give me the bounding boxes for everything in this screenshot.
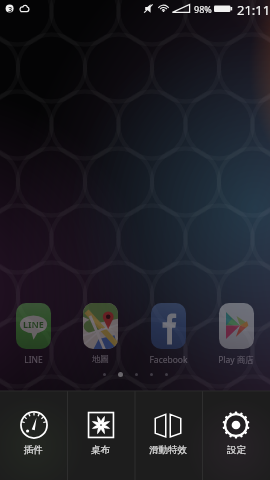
staticText: Play 商店: [218, 354, 254, 366]
staticText: LINE: [23, 318, 44, 330]
button[interactable]: LINE: [0, 303, 67, 366]
staticText: 21:11: [237, 1, 270, 19]
staticText: 98%: [194, 3, 212, 15]
staticText: 地圖: [92, 354, 109, 365]
staticText: LINE: [24, 354, 43, 366]
staticText: 滑動特效: [149, 444, 187, 456]
staticText: 3: [8, 4, 13, 14]
button[interactable]: 地圖: [67, 303, 134, 365]
staticText: 桌布: [91, 444, 110, 456]
button[interactable]: Play 商店: [202, 303, 270, 366]
button[interactable]: Facebook: [134, 303, 202, 366]
button[interactable]: 插件: [0, 391, 67, 480]
staticText: Facebook: [149, 354, 188, 366]
staticText: 插件: [24, 444, 43, 456]
button[interactable]: 滑動特效: [134, 391, 202, 480]
staticText: 設定: [227, 444, 246, 456]
button[interactable]: 設定: [202, 391, 270, 480]
button[interactable]: 桌布: [67, 391, 134, 480]
